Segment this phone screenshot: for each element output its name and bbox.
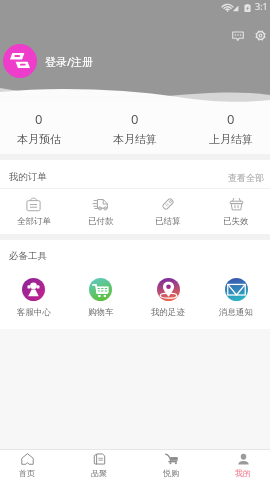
staticText: 购物车 [88, 307, 114, 318]
staticText: 客服中心 [17, 307, 51, 318]
staticText: 必备工具 [9, 250, 47, 262]
button[interactable]: 0 [17, 110, 61, 146]
staticText: 3:15 [255, 0, 270, 15]
button[interactable]: 全部订单 [0, 197, 67, 227]
staticText: 我的足迹 [151, 307, 185, 318]
staticText: 本月预估 [17, 132, 61, 146]
staticText: 已失效 [223, 216, 249, 227]
button[interactable]: 品聚 [91, 453, 107, 478]
button[interactable]: 已付款 [67, 197, 134, 227]
staticText: 消息通知 [219, 307, 253, 318]
staticText: 0 [35, 110, 43, 128]
button[interactable]: 查看全部 [228, 172, 270, 183]
staticText: 悦购 [163, 468, 179, 478]
staticText: 已付款 [88, 216, 114, 227]
button[interactable]: 我的 [235, 453, 251, 478]
button[interactable]: 客服中心 [0, 278, 67, 318]
button[interactable]: 0 [209, 110, 253, 146]
button[interactable]: 首页 [19, 453, 35, 478]
staticText: 首页 [19, 468, 35, 478]
button[interactable]: 我的足迹 [134, 278, 202, 318]
staticText: 0 [131, 110, 139, 128]
button[interactable]: 0 [113, 110, 157, 146]
staticText: 登录/注册 [45, 54, 94, 69]
button[interactable]: 购物车 [67, 278, 134, 318]
staticText: 0 [227, 110, 235, 128]
button[interactable]: 已结算 [134, 197, 202, 227]
staticText: 本月结算 [113, 132, 157, 146]
button[interactable]: 悦购 [163, 453, 179, 478]
staticText: 全部订单 [17, 216, 51, 227]
staticText: 上月结算 [209, 132, 253, 146]
button[interactable]: Messages [226, 24, 249, 47]
button[interactable]: 登录/注册 [3, 44, 94, 78]
button[interactable]: 消息通知 [202, 278, 270, 318]
button[interactable]: 已失效 [202, 197, 270, 227]
staticText: 我的订单 [9, 171, 47, 183]
button[interactable]: Settings [249, 24, 270, 47]
staticText: 我的 [235, 468, 251, 478]
staticText: 已结算 [155, 216, 181, 227]
staticText: 查看全部 [228, 172, 264, 183]
staticText: 品聚 [91, 468, 107, 478]
